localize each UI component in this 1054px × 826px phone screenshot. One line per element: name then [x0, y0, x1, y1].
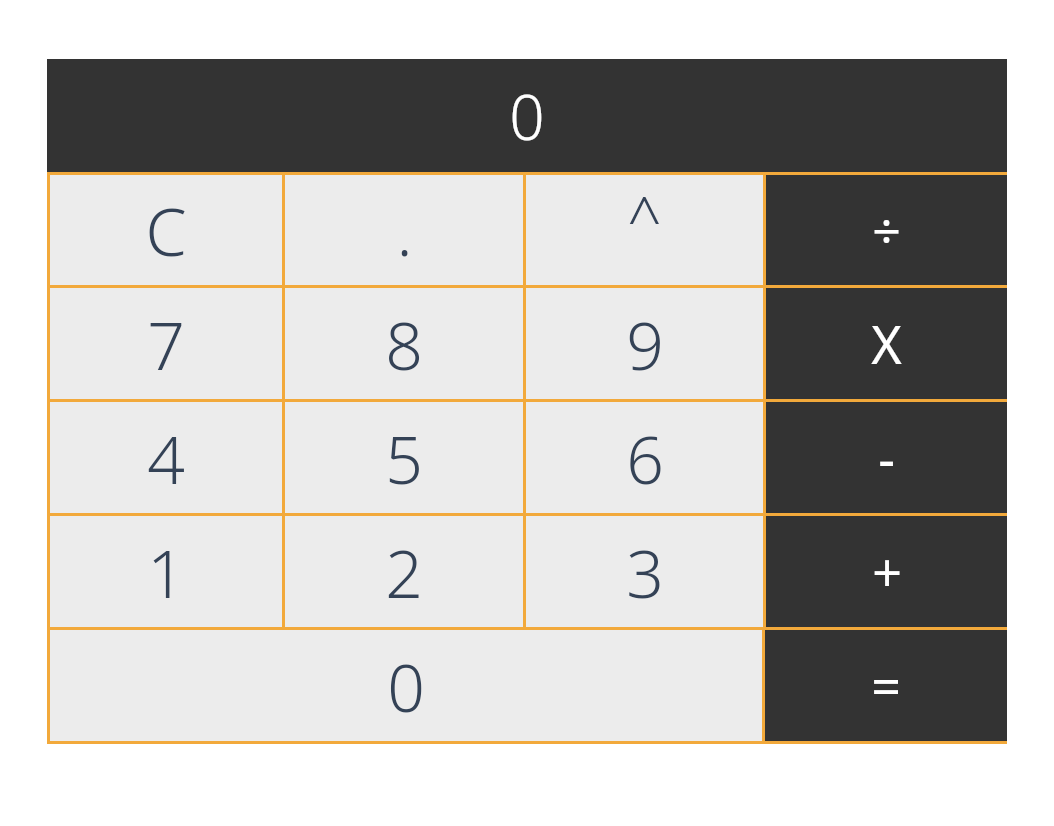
staticText: =	[871, 650, 901, 721]
staticText: 7	[147, 299, 185, 389]
staticText: ^	[627, 177, 662, 259]
button[interactable]: 7	[50, 288, 282, 399]
staticText: C	[145, 185, 187, 275]
button[interactable]: 0	[50, 630, 762, 741]
button[interactable]: 3	[526, 516, 763, 627]
staticText: ÷	[872, 196, 901, 264]
staticText: 9	[626, 299, 664, 389]
button[interactable]: C	[50, 175, 282, 285]
button[interactable]: ^	[526, 175, 763, 285]
staticText: 1	[147, 527, 185, 617]
button[interactable]: 1	[50, 516, 282, 627]
staticText: X	[871, 308, 902, 379]
button[interactable]: Plus	[766, 516, 1007, 627]
staticText: 2	[385, 527, 423, 617]
staticText: .	[396, 185, 413, 275]
staticText: 8	[385, 299, 423, 389]
staticText: +	[872, 536, 902, 607]
button[interactable]: Multiply	[766, 288, 1007, 399]
staticText: 6	[626, 413, 664, 503]
button[interactable]: 4	[50, 402, 282, 513]
button[interactable]: Divide	[766, 175, 1007, 285]
button[interactable]: 6	[526, 402, 763, 513]
staticText: 0	[387, 641, 425, 731]
staticText: 0	[509, 74, 545, 158]
button[interactable]: 5	[285, 402, 523, 513]
button[interactable]: 2	[285, 516, 523, 627]
button[interactable]: Equals	[765, 630, 1007, 741]
button[interactable]: Minus	[766, 402, 1007, 513]
staticText: 4	[147, 413, 185, 503]
staticText: 5	[385, 413, 423, 503]
staticText: -	[878, 422, 895, 493]
button[interactable]: .	[285, 175, 523, 285]
staticText: 3	[626, 527, 664, 617]
button[interactable]: 9	[526, 288, 763, 399]
button[interactable]: 8	[285, 288, 523, 399]
